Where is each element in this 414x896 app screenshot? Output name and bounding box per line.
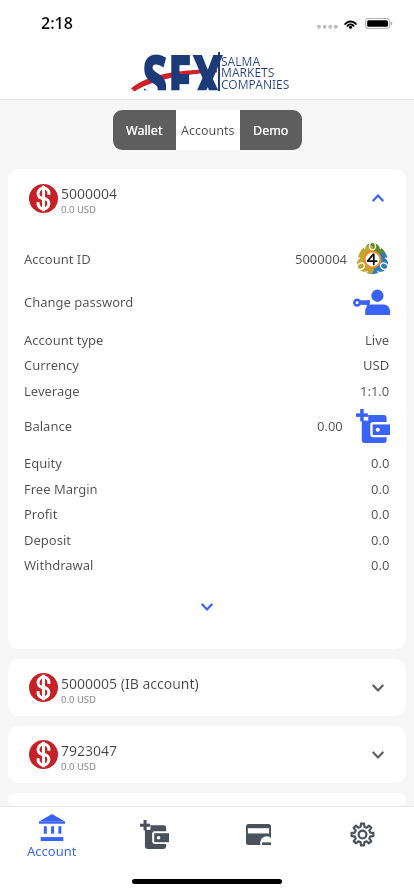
button[interactable]: Account level [355, 242, 390, 277]
button[interactable]: Deposit [356, 409, 390, 443]
staticText: 0.0 [371, 556, 390, 574]
button[interactable]: Tab [206, 807, 310, 862]
button[interactable]: Collapse [367, 187, 389, 209]
staticText: USD [363, 356, 390, 374]
button[interactable]: Tab [310, 807, 414, 862]
button[interactable]: 5000004 [8, 169, 406, 227]
staticText: Account type [24, 331, 104, 349]
button[interactable]: Change password [353, 289, 390, 315]
staticText: 0.0 USD [61, 203, 96, 216]
staticText: Leverage [24, 382, 80, 400]
button[interactable]: 5000005 (IB account) [8, 659, 406, 716]
button[interactable]: Account [0, 807, 103, 862]
staticText: 2:18 [41, 12, 73, 34]
staticText: Wallet [126, 122, 163, 139]
staticText: 0.0 [371, 505, 390, 523]
button[interactable]: Demo [240, 110, 302, 150]
staticText: 0.0 USD [61, 693, 96, 706]
staticText: Balance [24, 417, 72, 435]
staticText: Change password [24, 293, 134, 311]
staticText: 7923047 [61, 741, 118, 760]
button[interactable]: Wallet [113, 110, 176, 150]
staticText: 1:1.0 [360, 382, 390, 400]
staticText: 0.0 [371, 454, 390, 472]
staticText: Free Margin [24, 480, 98, 498]
button[interactable]: Tab [103, 807, 206, 862]
button[interactable]: Show more [8, 589, 406, 625]
staticText: 0.0 [371, 531, 390, 549]
staticText: Profit [24, 505, 58, 523]
staticText: 0.00 [317, 417, 343, 435]
staticText: Account ID [24, 250, 91, 268]
staticText: SALMA MARKETS COMPANIES [221, 53, 290, 93]
staticText: 5000004 [295, 250, 348, 268]
staticText: Withdrawal [24, 556, 94, 574]
staticText: 0.0 USD [61, 760, 96, 773]
button[interactable]: Accounts [176, 110, 240, 150]
staticText: 0.0 [371, 480, 390, 498]
staticText: 5000004 [61, 184, 118, 203]
staticText: Account [27, 842, 77, 860]
staticText: Deposit [24, 531, 71, 549]
staticText: SFX [142, 31, 224, 90]
staticText: Currency [24, 356, 79, 374]
button[interactable]: 7923047 [8, 726, 406, 783]
staticText: 5000005 (IB account) [61, 674, 199, 693]
staticText: Accounts [181, 122, 235, 139]
staticText: Equity [24, 454, 62, 472]
staticText: Live [365, 331, 390, 349]
staticText: Demo [253, 122, 289, 139]
